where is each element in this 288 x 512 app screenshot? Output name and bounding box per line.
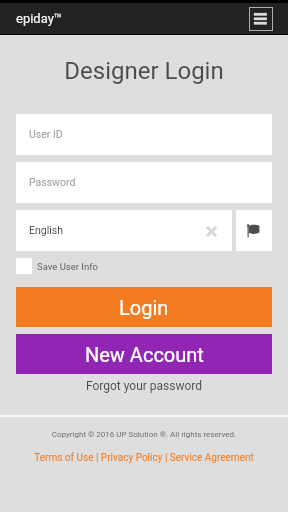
staticText: Designer Login — [0, 57, 288, 85]
button[interactable]: Forgot your password — [0, 379, 288, 393]
staticText: epiday™ — [16, 11, 62, 26]
staticText: User ID — [29, 128, 63, 140]
button[interactable]: Terms of Use | Privacy Policy | Service … — [0, 452, 288, 464]
button[interactable]: Clear — [202, 223, 218, 239]
staticText: Copyright © 2016 UP Solution ®. All righ… — [0, 430, 288, 439]
button[interactable]: English — [16, 210, 232, 251]
staticText: Save User Info — [37, 261, 98, 272]
staticText: Password — [29, 176, 76, 188]
button[interactable]: Login — [16, 287, 272, 327]
button[interactable]: User ID — [16, 114, 272, 155]
button[interactable]: Save User Info — [16, 258, 98, 274]
staticText: New Account — [85, 343, 204, 366]
staticText: English — [29, 224, 63, 236]
button[interactable]: Select language — [236, 210, 272, 251]
button[interactable]: Menu — [249, 7, 273, 31]
button[interactable]: New Account — [16, 334, 272, 374]
button[interactable]: Password — [16, 162, 272, 203]
staticText: Login — [119, 296, 169, 319]
